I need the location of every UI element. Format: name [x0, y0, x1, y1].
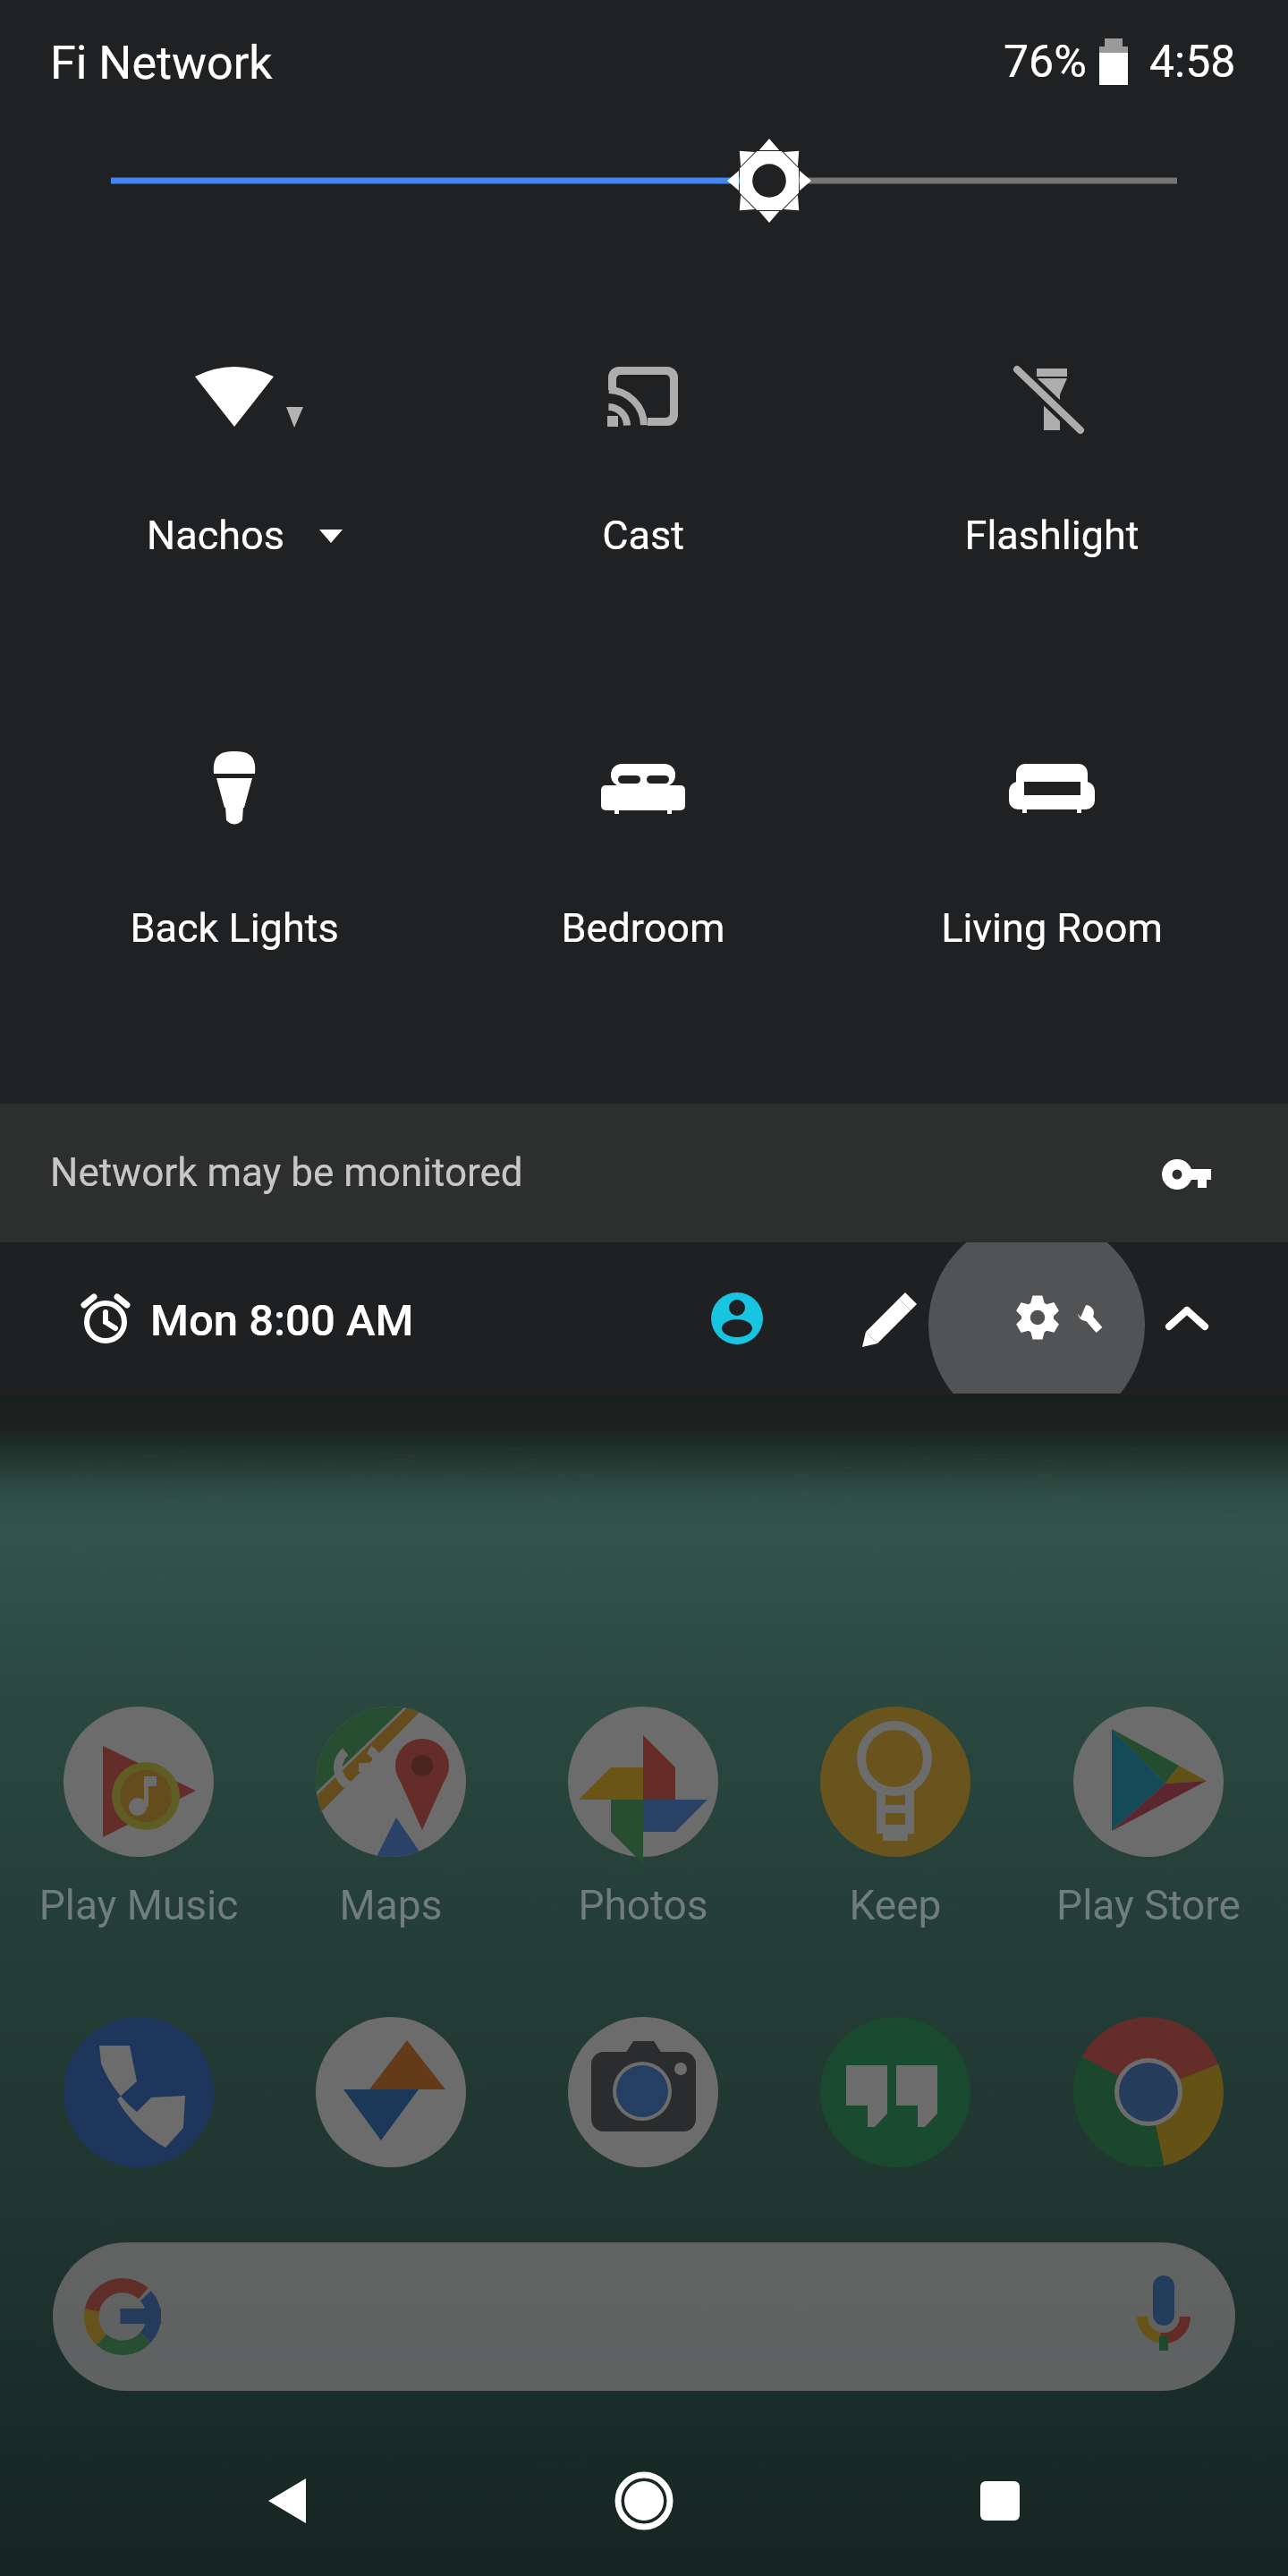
button[interactable]: Chrome: [962, 2012, 1106, 2156]
button[interactable]: Brightness: [36, 116, 1252, 215]
button[interactable]: Search: [52, 2241, 1234, 2384]
staticText: Maps: [266, 1881, 516, 1929]
button[interactable]: [0, 1104, 1288, 1242]
button[interactable]: Living Room: [853, 726, 1252, 977]
button[interactable]: Photos: [512, 1646, 655, 1851]
button[interactable]: Collapse: [1136, 1242, 1250, 1394]
button[interactable]: Settings: [948, 1242, 1127, 1394]
button[interactable]: Hangouts: [737, 2012, 880, 2156]
button[interactable]: Play Store: [962, 1646, 1106, 1851]
button[interactable]: Play Music: [61, 1646, 204, 1851]
staticText: Mon 8:00 AM: [150, 1295, 414, 1346]
staticText: Living Room: [852, 904, 1251, 952]
staticText: 76%: [1004, 36, 1087, 89]
staticText: Bedroom: [444, 904, 843, 952]
button[interactable]: Flashlight: [853, 331, 1252, 581]
staticText: Play Store: [1023, 1881, 1274, 1929]
button[interactable]: Phone: [61, 2012, 204, 2156]
button[interactable]: Home: [581, 2451, 707, 2558]
button[interactable]: Keep: [737, 1646, 880, 1851]
staticText: Nachos: [16, 512, 415, 559]
staticText: Play Music: [13, 1881, 264, 1929]
staticText: Back Lights: [35, 904, 434, 952]
button[interactable]: Camera: [512, 2012, 655, 2156]
button[interactable]: Back Lights: [36, 726, 435, 977]
button[interactable]: Back: [224, 2451, 349, 2558]
button[interactable]: User: [698, 1242, 812, 1394]
button[interactable]: Edit: [832, 1242, 946, 1394]
button[interactable]: Recents: [939, 2451, 1064, 2558]
staticText: Flashlight: [852, 512, 1251, 559]
staticText: Fi Network: [50, 36, 273, 90]
button[interactable]: Cast: [445, 331, 843, 581]
staticText: Cast: [444, 512, 843, 559]
staticText: Keep: [770, 1881, 1021, 1929]
button[interactable]: Nachos: [36, 331, 435, 581]
button[interactable]: Maps: [286, 1646, 429, 1851]
button[interactable]: Bedroom: [445, 726, 843, 977]
staticText: Network may be monitored: [50, 1149, 523, 1196]
staticText: 4:58: [1149, 36, 1236, 89]
staticText: Photos: [518, 1881, 768, 1929]
button[interactable]: Drive: [286, 2012, 429, 2156]
